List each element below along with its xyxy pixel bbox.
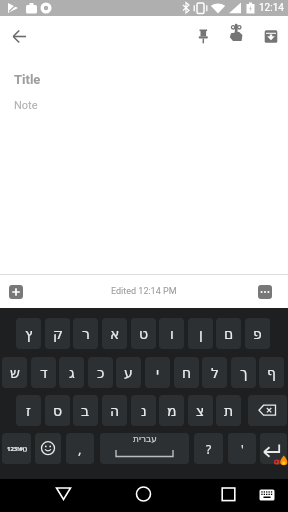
button[interactable]: ט <box>131 318 156 349</box>
button[interactable] <box>251 479 282 510</box>
staticText: ו <box>170 326 174 342</box>
button[interactable]: ן <box>188 318 213 349</box>
button[interactable]: 123!#() <box>2 433 31 464</box>
button[interactable]: ל <box>202 357 227 388</box>
staticText: , <box>78 440 82 458</box>
staticText: ס <box>53 403 63 419</box>
button[interactable]: עברית <box>100 433 189 464</box>
button[interactable]: מ <box>159 395 184 426</box>
button[interactable]: ץ <box>16 318 41 349</box>
button[interactable]: ח <box>174 357 199 388</box>
button[interactable]: ך <box>231 357 256 388</box>
button[interactable] <box>190 22 218 50</box>
staticText: ת <box>224 403 234 419</box>
button[interactable]: י <box>145 357 170 388</box>
staticText: פ <box>253 326 262 342</box>
button[interactable] <box>9 285 23 299</box>
staticText: ? <box>206 441 212 457</box>
button[interactable]: ה <box>102 395 127 426</box>
button[interactable]: ר <box>73 318 98 349</box>
staticText: 12:14 <box>259 2 284 14</box>
staticText: Title <box>14 72 41 87</box>
button[interactable] <box>4 20 36 52</box>
staticText: ה <box>110 403 120 419</box>
staticText: ן <box>199 326 203 342</box>
button[interactable]: ק <box>45 318 70 349</box>
staticText: ח <box>182 365 192 381</box>
staticText: עברית <box>133 434 157 444</box>
button[interactable] <box>223 22 251 50</box>
staticText: ף <box>267 365 276 381</box>
button[interactable]: ש <box>2 357 27 388</box>
button[interactable]: ? <box>194 433 223 464</box>
button[interactable] <box>212 479 245 512</box>
staticText: ק <box>53 326 63 342</box>
button[interactable] <box>47 479 80 512</box>
staticText: 123!#() <box>7 445 27 453</box>
button[interactable] <box>248 395 287 426</box>
staticText: ב <box>81 403 90 419</box>
button[interactable] <box>35 433 61 464</box>
staticText: ץ <box>25 326 33 342</box>
staticText: ש <box>10 365 20 381</box>
button[interactable] <box>258 285 272 299</box>
button[interactable]: ג <box>59 357 84 388</box>
button[interactable]: ו <box>159 318 184 349</box>
button[interactable]: א <box>102 318 127 349</box>
staticText: Note <box>14 99 38 112</box>
button[interactable]: ף <box>259 357 284 388</box>
staticText: ט <box>139 326 149 342</box>
staticText: י <box>156 365 160 381</box>
staticText: ר <box>82 326 90 342</box>
button[interactable]: , <box>66 433 94 464</box>
button[interactable]: ב <box>73 395 98 426</box>
staticText: נ <box>141 403 147 419</box>
staticText: Edited 12:14 PM <box>111 286 177 297</box>
button[interactable]: פ <box>245 318 270 349</box>
staticText: ך <box>240 365 248 381</box>
button[interactable]: צ <box>188 395 213 426</box>
button[interactable] <box>258 22 286 50</box>
staticText: ע <box>124 365 133 381</box>
button[interactable]: ס <box>45 395 70 426</box>
staticText: ג <box>69 365 75 381</box>
button[interactable]: ת <box>216 395 241 426</box>
staticText: כ <box>97 365 105 381</box>
staticText: צ <box>196 403 205 419</box>
staticText: ל <box>211 365 219 381</box>
staticText: ז <box>26 403 31 419</box>
button[interactable]: ז <box>16 395 41 426</box>
button[interactable] <box>260 433 287 464</box>
staticText: ' <box>241 441 244 457</box>
staticText: מ <box>167 403 177 419</box>
button[interactable]: נ <box>131 395 156 426</box>
staticText: ם <box>224 326 234 342</box>
button[interactable]: ' <box>228 433 256 464</box>
button[interactable]: כ <box>88 357 113 388</box>
staticText: א <box>110 326 120 342</box>
button[interactable] <box>127 479 160 512</box>
button[interactable]: ע <box>116 357 141 388</box>
button[interactable]: ם <box>216 318 241 349</box>
staticText: ד <box>40 365 48 381</box>
button[interactable]: ד <box>31 357 56 388</box>
